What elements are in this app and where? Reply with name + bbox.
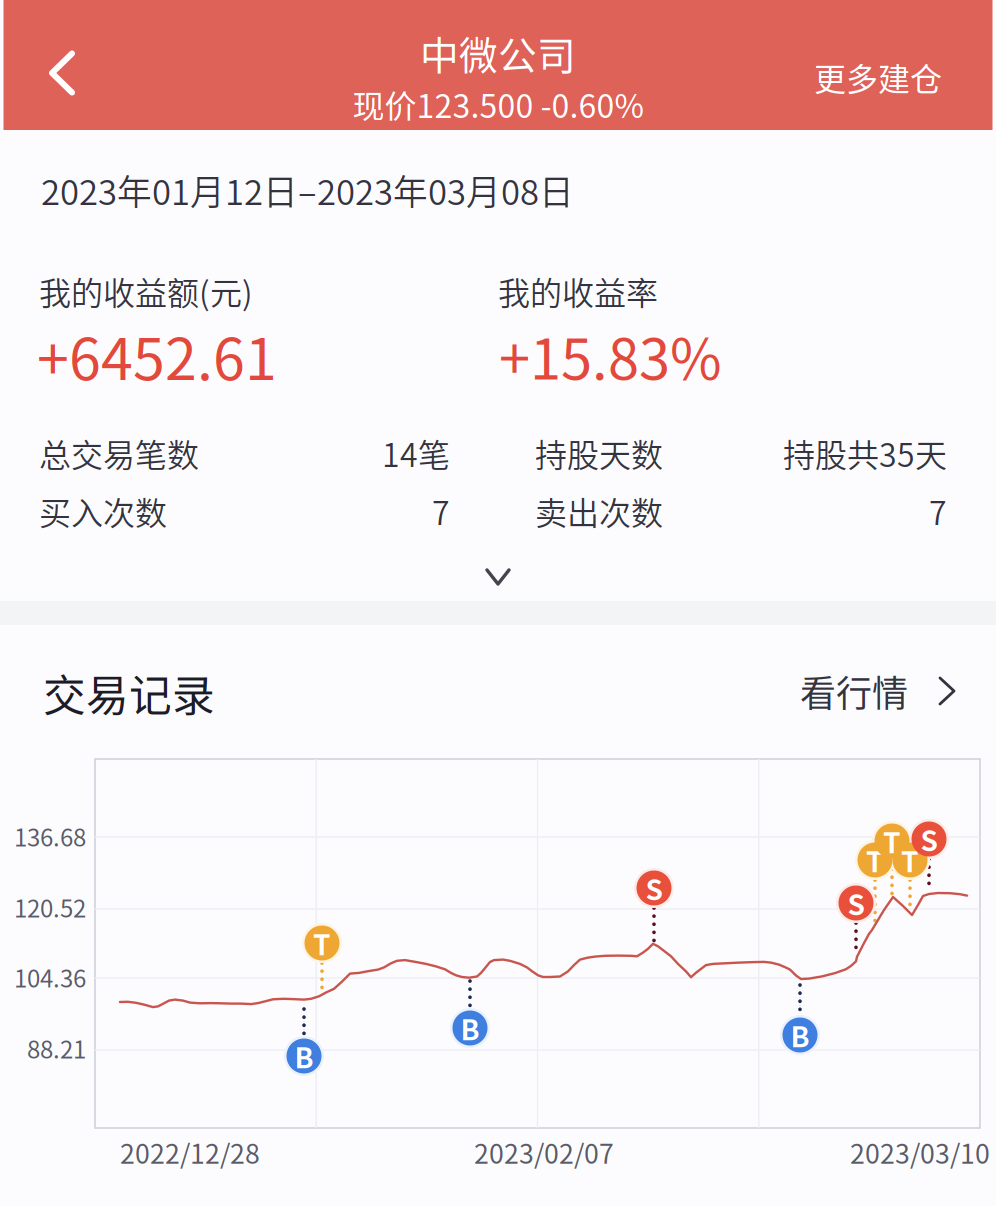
staticText: 中微公司	[420, 25, 576, 81]
button[interactable]: Expand details	[448, 549, 548, 605]
staticText: B	[460, 1008, 479, 1048]
staticText: 卖出次数	[535, 488, 663, 534]
staticText: 120.52	[14, 890, 86, 924]
staticText: T	[866, 840, 884, 880]
button[interactable]: 看行情	[734, 661, 954, 721]
staticText: 104.36	[14, 960, 86, 994]
staticText: +15.83%	[499, 314, 722, 396]
button[interactable]: Back	[17, 21, 107, 125]
staticText: 看行情	[800, 665, 908, 717]
staticText: 136.68	[14, 819, 86, 853]
staticText: 持股天数	[535, 430, 663, 476]
staticText: 交易记录	[43, 662, 215, 724]
staticText: B	[294, 1036, 313, 1076]
staticText: S	[645, 868, 662, 908]
staticText: 7	[929, 488, 947, 534]
staticText: 持股共35天	[783, 430, 947, 476]
staticText: 买入次数	[39, 488, 167, 534]
staticText: 2023/02/07	[474, 1133, 614, 1171]
button[interactable]: 更多建仓	[796, 36, 960, 118]
staticText: S	[920, 819, 937, 859]
staticText: 我的收益额(元)	[39, 268, 253, 314]
staticText: 7	[432, 488, 450, 534]
staticText: 我的收益率	[498, 268, 658, 314]
staticText: 88.21	[27, 1031, 86, 1065]
staticText: S	[847, 883, 864, 923]
staticText: 14笔	[382, 430, 450, 476]
staticText: 2022/12/28	[120, 1133, 260, 1171]
staticText: +6452.61	[37, 313, 277, 396]
staticText: 更多建仓	[814, 54, 942, 100]
staticText: T	[901, 840, 919, 880]
staticText: 2023/03/10	[850, 1133, 990, 1171]
staticText: 总交易笔数	[39, 430, 199, 476]
staticText: 现价123.500 -0.60%	[352, 81, 643, 127]
staticText: 2023年01月12日–2023年03月08日	[41, 165, 574, 215]
staticText: T	[313, 923, 331, 963]
staticText: B	[790, 1015, 809, 1055]
staticText: T	[883, 821, 901, 861]
